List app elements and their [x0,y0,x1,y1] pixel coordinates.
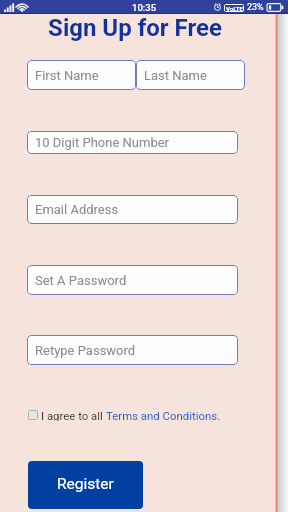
staticText: Sign Up for Free [0,14,270,42]
button[interactable]: Retype Password [27,335,238,365]
staticText: Last Name [144,68,207,83]
staticText: 10:35 [132,2,157,13]
staticText: First Name [35,68,99,83]
button[interactable]: 10 Digit Phone Number [27,131,238,154]
button[interactable]: Terms and Conditions. [106,409,221,421]
button[interactable]: Last Name [136,60,245,90]
button[interactable]: Email Address [27,195,238,224]
staticText: 23% [247,2,264,13]
button[interactable]: I agree checkbox [28,410,38,420]
staticText: 10 Digit Phone Number [35,135,169,150]
staticText: Register [57,475,114,493]
staticText: VoLTE [226,5,243,12]
staticText: Retype Password [35,343,136,358]
button[interactable]: Set A Password [27,265,238,295]
button[interactable]: Register [28,461,143,509]
staticText: Set A Password [35,273,127,288]
button[interactable]: First Name [27,60,136,90]
staticText: I agree to all [41,409,106,421]
staticText: Email Address [35,202,119,217]
